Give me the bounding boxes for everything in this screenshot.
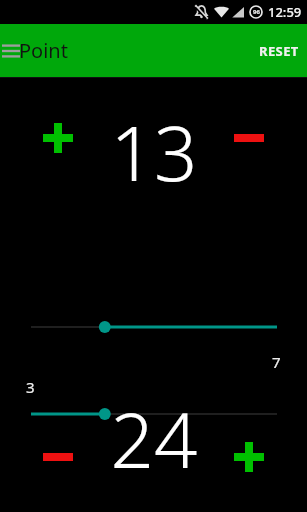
button[interactable]: Decrease bottom score: [28, 427, 88, 487]
button[interactable]: Increase bottom score: [219, 427, 279, 487]
staticText: 3: [26, 377, 35, 397]
button[interactable]: Bottom slider, value 3: [0, 401, 307, 427]
staticText: 24: [74, 387, 234, 491]
button[interactable]: Increase top score: [28, 108, 88, 168]
staticText: 12:59: [268, 3, 302, 21]
button[interactable]: Decrease top score: [219, 108, 279, 168]
staticText: 13: [84, 100, 224, 204]
button[interactable]: Open navigation menu: [0, 31, 31, 71]
staticText: 96: [253, 8, 260, 16]
button[interactable]: RESET: [251, 32, 307, 70]
staticText: 7: [272, 352, 281, 372]
staticText: RESET: [259, 42, 299, 60]
staticText: Point: [19, 37, 68, 64]
button[interactable]: Top slider, value 7: [0, 314, 307, 340]
